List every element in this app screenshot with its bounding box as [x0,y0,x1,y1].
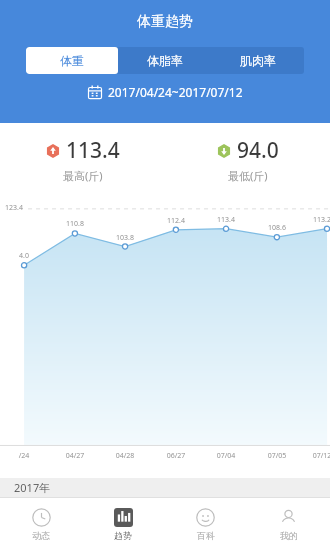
staticText: 04/27 [59,451,91,461]
staticText: 我的 [280,530,298,541]
staticText: 4.0 [10,251,38,261]
staticText: 2017/04/24~2017/07/12 [108,84,243,100]
staticText: 113.4 [212,215,240,225]
button[interactable]: 动态 [0,498,82,550]
button[interactable]: Date range [84,82,247,102]
staticText: 108.6 [263,223,291,233]
button[interactable]: Maximum [0,136,165,183]
button[interactable]: 我的 [247,498,330,550]
button[interactable]: 体脂率 [118,47,211,74]
staticText: 体脂率 [147,53,183,68]
staticText: 94.0 [237,136,279,165]
staticText: 113.2 [308,215,330,225]
button[interactable]: Minimum [165,136,330,183]
staticText: 动态 [32,530,50,541]
staticText: 趋势 [114,530,132,541]
staticText: 112.4 [162,216,190,226]
other: Minimum [217,144,231,158]
button[interactable]: 趋势 [82,498,164,550]
staticText: 06/27 [160,451,192,461]
other: Maximum [46,144,60,158]
staticText: 103.8 [111,233,139,243]
button[interactable]: 肌肉率 [211,47,304,74]
button[interactable]: 百科 [164,498,247,550]
staticText: 07/12 [306,451,330,461]
button[interactable]: 体重 [26,47,118,74]
staticText: 最高(斤) [63,168,103,183]
staticText: 07/05 [261,451,293,461]
staticText: 07/04 [210,451,242,461]
staticText: 113.4 [66,136,120,165]
staticText: 百科 [197,530,215,541]
staticText: 肌肉率 [240,53,276,68]
staticText: 2017年 [14,480,51,495]
staticText: 最低(斤) [228,168,268,183]
staticText: /24 [8,451,40,461]
staticText: 04/28 [109,451,141,461]
staticText: 123.4 [5,203,23,213]
staticText: 体重 [60,53,84,68]
staticText: 110.8 [61,219,89,229]
staticText: 体重趋势 [137,13,193,31]
other: Date range [88,85,102,99]
